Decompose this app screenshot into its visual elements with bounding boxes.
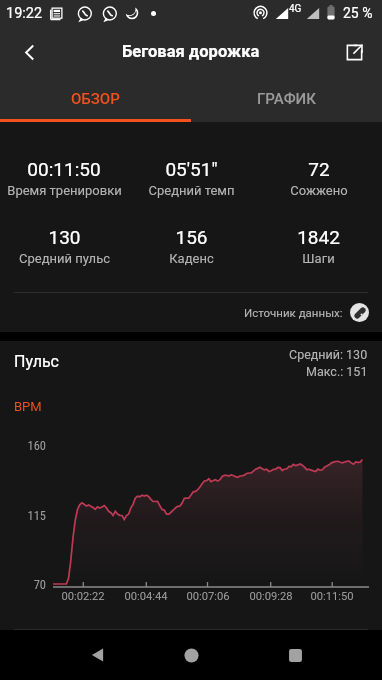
- button[interactable]: 130: [0, 226, 128, 266]
- button[interactable]: ОБЗОР: [0, 75, 191, 122]
- staticText: 1842: [297, 226, 340, 248]
- staticText: ОБЗОР: [71, 90, 120, 108]
- staticText: 00:07:06: [178, 590, 238, 603]
- staticText: 00:04:44: [116, 590, 176, 603]
- button[interactable]: 156: [128, 226, 255, 266]
- button[interactable]: 72: [255, 158, 382, 198]
- button[interactable]: 1842: [255, 226, 382, 266]
- staticText: 19:22: [6, 5, 43, 22]
- staticText: 00:02:22: [53, 590, 113, 603]
- staticText: Средний: 130: [289, 347, 368, 362]
- button[interactable]: 05'51": [128, 158, 255, 198]
- staticText: 72: [308, 158, 330, 180]
- staticText: Источник данных:: [244, 306, 343, 319]
- staticText: 00:11:50: [302, 590, 362, 603]
- staticText: Время тренировки: [7, 183, 122, 198]
- button[interactable]: Back: [8, 31, 50, 73]
- staticText: 115: [14, 508, 46, 523]
- staticText: Каденс: [169, 251, 214, 266]
- staticText: 05'51": [165, 158, 218, 180]
- button[interactable]: Data source device: [350, 303, 369, 322]
- staticText: Беговая дорожка: [122, 42, 260, 61]
- staticText: 4G: [289, 3, 302, 15]
- button[interactable]: Open in browser: [333, 31, 375, 73]
- staticText: 160: [14, 438, 46, 453]
- staticText: 00:11:50: [27, 158, 101, 180]
- staticText: Сожжено: [290, 183, 348, 198]
- staticText: Макс.: 151: [306, 364, 368, 379]
- staticText: 70: [14, 577, 46, 592]
- button[interactable]: ГРАФИК: [191, 75, 382, 122]
- staticText: 00:09:28: [241, 590, 301, 603]
- button[interactable]: Recent apps: [271, 631, 319, 679]
- staticText: 156: [175, 226, 208, 248]
- staticText: Пульс: [14, 352, 59, 371]
- staticText: 25 %: [343, 5, 373, 21]
- staticText: Средний темп: [148, 183, 235, 198]
- button[interactable]: Home: [167, 631, 215, 679]
- staticText: Шаги: [302, 251, 335, 266]
- button[interactable]: 00:11:50: [0, 158, 128, 198]
- button[interactable]: Back: [74, 631, 122, 679]
- staticText: Средний пульс: [19, 251, 110, 266]
- staticText: ГРАФИК: [257, 90, 316, 108]
- staticText: 130: [48, 226, 81, 248]
- staticText: BPM: [14, 399, 42, 414]
